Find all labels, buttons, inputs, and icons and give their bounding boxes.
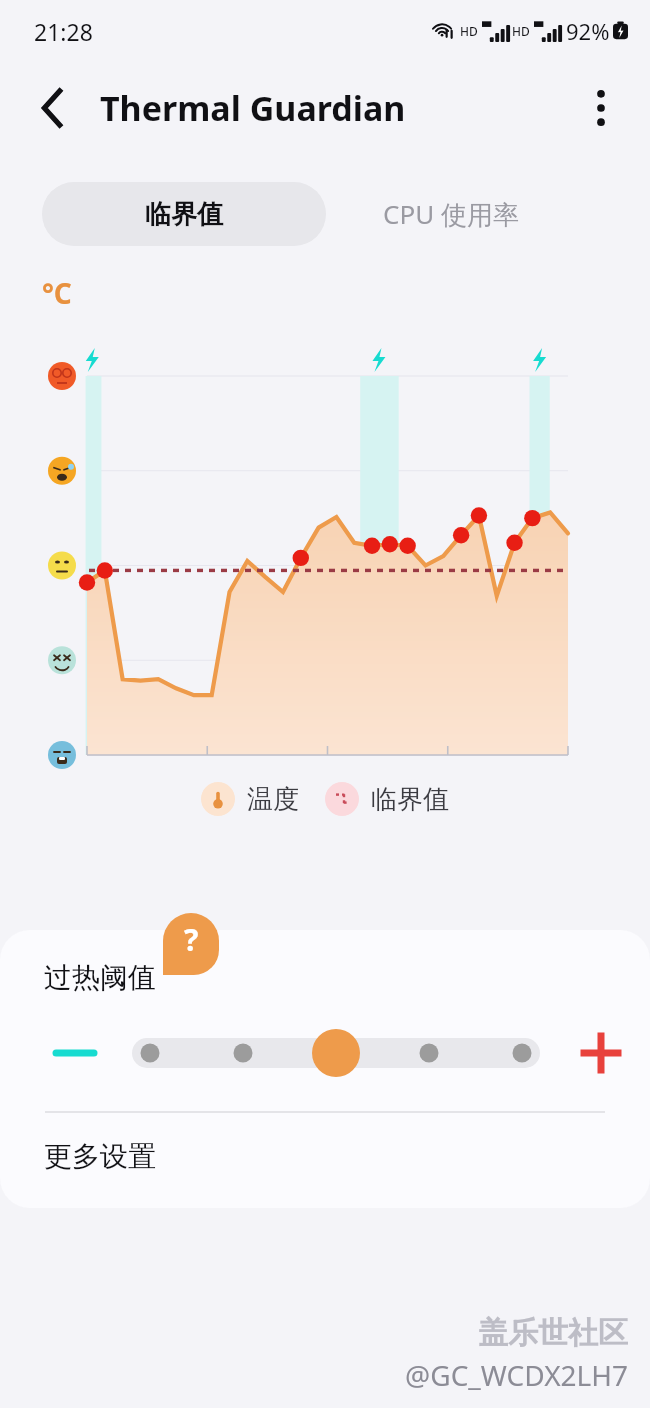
button[interactable]: Help bbox=[163, 913, 219, 975]
button[interactable]: More options bbox=[574, 81, 628, 135]
staticText: 盖乐世社区 bbox=[478, 1314, 628, 1352]
staticText: HD bbox=[460, 23, 478, 39]
staticText: 临界值 bbox=[145, 198, 223, 231]
staticText: CPU 使用率 bbox=[383, 196, 519, 232]
staticText: @GC_WCDX2LH7 bbox=[405, 1356, 628, 1394]
staticText: 临界值 bbox=[371, 783, 449, 816]
button[interactable]: Decrease bbox=[44, 1025, 106, 1081]
button[interactable]: Increase bbox=[566, 1023, 636, 1083]
button[interactable]: 更多设置 bbox=[0, 1113, 650, 1199]
button[interactable]: CPU 使用率 bbox=[326, 182, 576, 246]
staticText: ? bbox=[184, 919, 199, 960]
staticText: 过热阈值 bbox=[44, 960, 156, 995]
button[interactable] bbox=[132, 1025, 540, 1081]
button[interactable]: Back bbox=[26, 81, 80, 135]
button[interactable]: 临界值 bbox=[42, 182, 326, 246]
staticText: HD bbox=[512, 23, 530, 39]
staticText: 温度 bbox=[247, 783, 299, 816]
staticText: 21:28 bbox=[34, 16, 93, 47]
staticText: Thermal Guardian bbox=[100, 85, 406, 131]
staticText: 更多设置 bbox=[44, 1139, 156, 1174]
staticText: °C bbox=[42, 274, 72, 312]
staticText: 92% bbox=[566, 16, 610, 46]
